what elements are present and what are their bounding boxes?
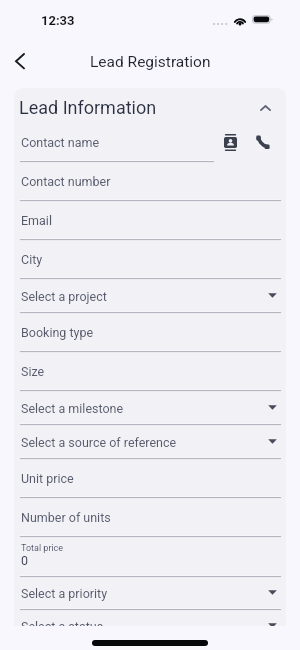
staticText: Select a project xyxy=(21,289,107,304)
button[interactable]: Select a priority xyxy=(14,576,286,609)
staticText: Unit price xyxy=(21,471,74,486)
button[interactable]: Size xyxy=(14,351,286,390)
button[interactable]: Back xyxy=(2,43,38,79)
staticText: Contact name xyxy=(21,135,100,150)
button[interactable]: City xyxy=(14,239,286,278)
staticText: City xyxy=(21,252,43,267)
button[interactable]: Contact number xyxy=(14,161,286,200)
staticText: Total price xyxy=(21,543,64,554)
staticText: Size xyxy=(21,364,45,379)
staticText: Select a status xyxy=(21,619,104,626)
staticText: 12:33 xyxy=(41,13,75,28)
button[interactable]: Lead Information xyxy=(14,88,286,122)
staticText: Lead Information xyxy=(19,97,157,118)
staticText: Lead Registration xyxy=(90,53,211,71)
button[interactable]: Collapse section xyxy=(248,95,282,121)
button[interactable]: Select a milestone xyxy=(14,390,286,424)
staticText: Select a source of reference xyxy=(21,435,177,450)
staticText: Email xyxy=(21,213,52,228)
button[interactable]: Unit price xyxy=(14,458,286,497)
button[interactable]: Contact name xyxy=(14,122,286,161)
button[interactable]: Select a project xyxy=(14,278,286,312)
staticText: Contact number xyxy=(21,174,111,189)
button[interactable]: Call xyxy=(252,131,274,153)
staticText: Select a milestone xyxy=(21,401,124,416)
button[interactable]: Select a status xyxy=(14,609,286,626)
staticText: Select a priority xyxy=(21,586,108,601)
button[interactable]: Email xyxy=(14,200,286,239)
staticText: 0 xyxy=(21,553,29,568)
button[interactable]: Total price xyxy=(14,536,286,576)
staticText: Booking type xyxy=(21,325,94,340)
button[interactable]: Select a source of reference xyxy=(14,424,286,458)
button[interactable]: Pick from contacts xyxy=(219,131,241,153)
staticText: Number of units xyxy=(21,510,111,525)
button[interactable]: Booking type xyxy=(14,312,286,351)
button[interactable]: Number of units xyxy=(14,497,286,536)
